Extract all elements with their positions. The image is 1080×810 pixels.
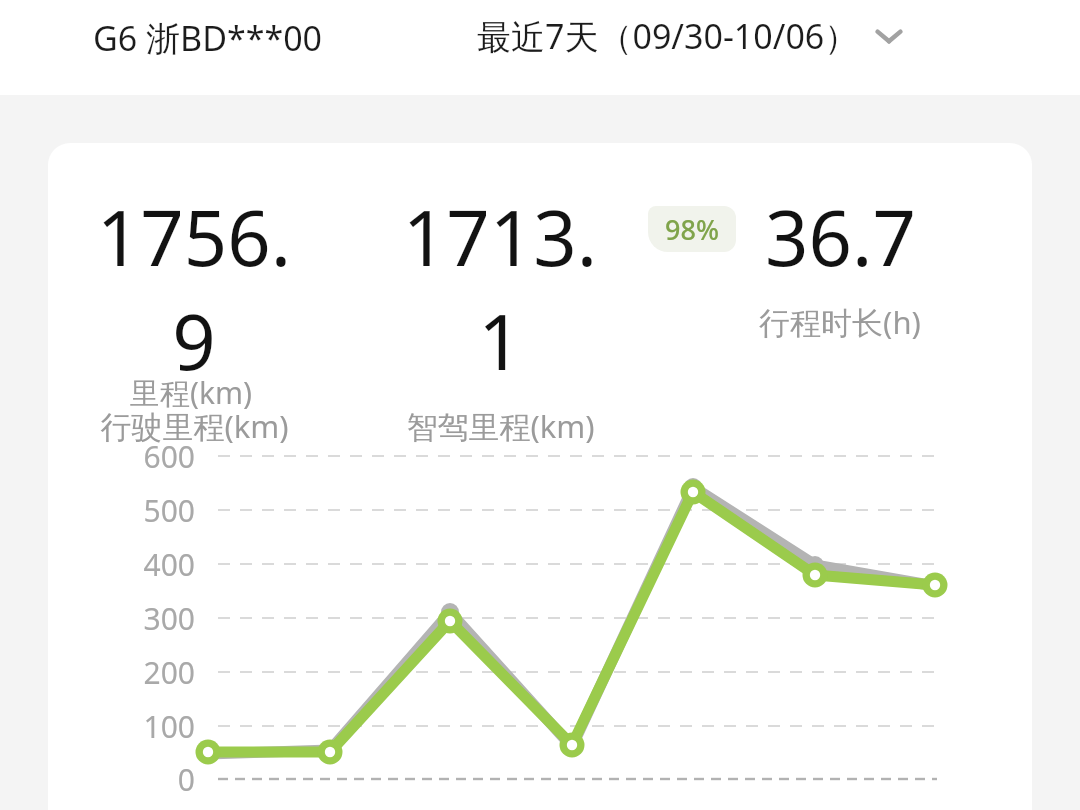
staticText: 行程时长(h): [759, 301, 921, 343]
staticText: 600: [80, 436, 195, 477]
button[interactable]: 最近7天（09/30-10/06）: [477, 13, 911, 59]
staticText: 400: [80, 544, 195, 585]
button[interactable]: G6 浙BD***00: [93, 15, 323, 61]
button[interactable]: 1756.9: [84, 185, 304, 447]
staticText: 500: [80, 490, 195, 531]
staticText: 300: [80, 598, 195, 639]
staticText: 智驾里程(km): [406, 405, 595, 447]
staticText: 最近7天（09/30-10/06）: [477, 13, 859, 59]
staticText: 200: [80, 652, 195, 693]
other: Change date range: [867, 14, 911, 58]
staticText: 1713.1: [390, 185, 610, 393]
staticText: 36.7: [765, 185, 916, 289]
button[interactable]: 1713.1: [390, 185, 610, 447]
staticText: 1756.9: [84, 185, 304, 393]
button[interactable]: 36.7: [730, 185, 950, 343]
staticText: 0: [80, 759, 195, 800]
staticText: 行驶里程(km): [100, 405, 289, 447]
staticText: 98%: [665, 211, 719, 248]
staticText: 里程(km): [130, 372, 253, 413]
button[interactable]: [48, 143, 1032, 810]
staticText: 100: [80, 706, 195, 747]
button[interactable]: 98%: [648, 206, 736, 252]
